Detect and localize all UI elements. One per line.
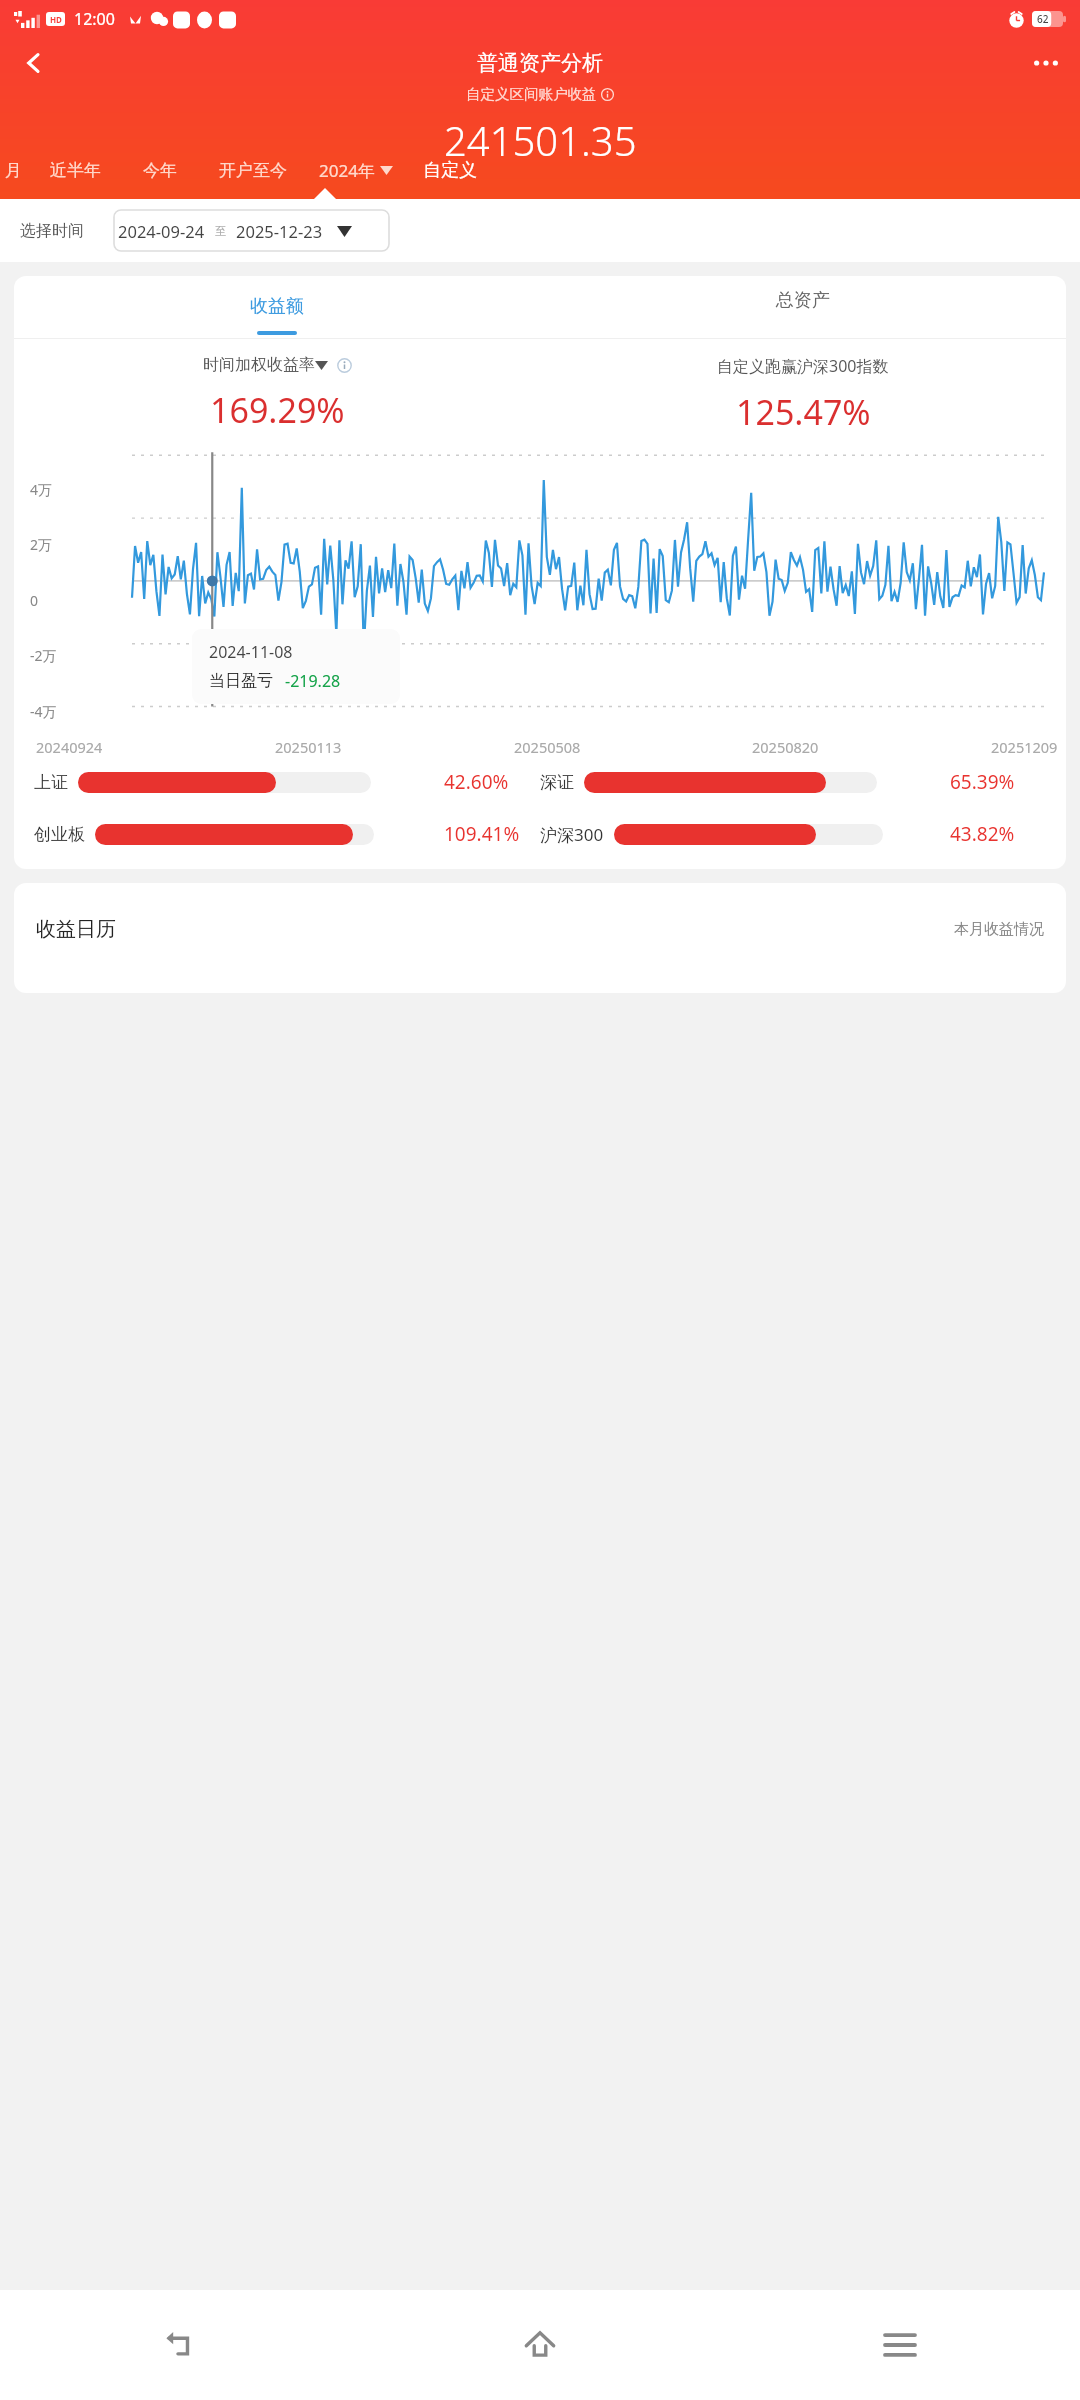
staticText: 2万 — [30, 535, 70, 554]
staticText: 62 — [1037, 12, 1049, 26]
staticText: 当日盈亏 — [209, 671, 273, 691]
button[interactable]: 深证 — [540, 769, 1046, 795]
staticText: 65.39% — [950, 769, 1046, 795]
staticText: 2024-09-24 — [118, 220, 205, 242]
staticText: 自定义区间账户收益 — [466, 85, 597, 103]
staticText: 241501.35 — [444, 113, 637, 167]
button[interactable]: More options — [1022, 39, 1070, 87]
button[interactable]: Home — [360, 2290, 720, 2400]
staticText: 深证 — [540, 772, 574, 793]
staticText: 沪深300 — [540, 823, 604, 846]
staticText: 上证 — [34, 772, 68, 793]
staticText: 开户至今 — [219, 160, 287, 181]
staticText: 20250508 — [514, 737, 581, 757]
button[interactable]: Back — [10, 39, 58, 87]
staticText: 收益日历 — [36, 917, 116, 942]
staticText: -219.28 — [285, 670, 341, 692]
button[interactable]: 开户至今 — [219, 141, 287, 199]
staticText: 至 — [215, 224, 226, 238]
staticText: 109.41% — [444, 821, 540, 847]
staticText: 月 — [5, 160, 22, 181]
staticText: 今年 — [143, 160, 177, 181]
staticText: 125.47% — [736, 389, 871, 435]
button[interactable]: 总资产 — [540, 276, 1066, 338]
staticText: 本月收益情况 — [954, 920, 1044, 939]
button[interactable]: 自定义 — [423, 141, 477, 199]
staticText: 自定义跑赢沪深300指数 — [717, 355, 889, 377]
button[interactable]: 收益额 — [14, 276, 540, 338]
button[interactable]: 上证 — [34, 769, 540, 795]
staticText: 选择时间 — [20, 221, 84, 241]
staticText: 近半年 — [50, 160, 101, 181]
staticText: 普通资产分析 — [477, 50, 603, 76]
staticText: 时间加权收益率 — [203, 355, 315, 375]
staticText: 169.29% — [210, 387, 345, 433]
staticText: 4万 — [30, 480, 70, 499]
staticText: HD — [50, 14, 62, 25]
staticText: 0 — [30, 591, 70, 610]
staticText: 20250113 — [275, 737, 342, 757]
staticText: 收益额 — [250, 295, 304, 318]
button[interactable]: 2024-09-24 — [102, 212, 368, 250]
staticText: 12:00 — [74, 8, 115, 30]
staticText: 总资产 — [776, 289, 830, 312]
staticText: 20240924 — [36, 737, 103, 757]
button[interactable]: 时间加权收益率 — [203, 355, 352, 375]
staticText: 43.82% — [950, 821, 1046, 847]
button[interactable]: 月 — [0, 141, 22, 199]
staticText: 42.60% — [444, 769, 540, 795]
button[interactable]: Recent apps — [720, 2290, 1080, 2400]
staticText: -2万 — [30, 646, 70, 665]
staticText: 自定义 — [423, 159, 477, 182]
staticText: 2024年 — [319, 159, 375, 182]
staticText: 20251209 — [991, 737, 1058, 757]
button[interactable]: 沪深300 — [540, 821, 1046, 847]
button[interactable]: 创业板 — [34, 821, 540, 847]
staticText: -4万 — [30, 702, 70, 721]
button[interactable]: 今年 — [143, 141, 177, 199]
button[interactable]: Back — [0, 2290, 360, 2400]
staticText: 2025-12-23 — [236, 220, 323, 242]
staticText: 2024-11-08 — [209, 641, 293, 663]
staticText: 20250820 — [752, 737, 819, 757]
staticText: 创业板 — [34, 824, 85, 845]
button[interactable]: 近半年 — [50, 141, 101, 199]
button[interactable]: 2024年 — [319, 159, 393, 182]
